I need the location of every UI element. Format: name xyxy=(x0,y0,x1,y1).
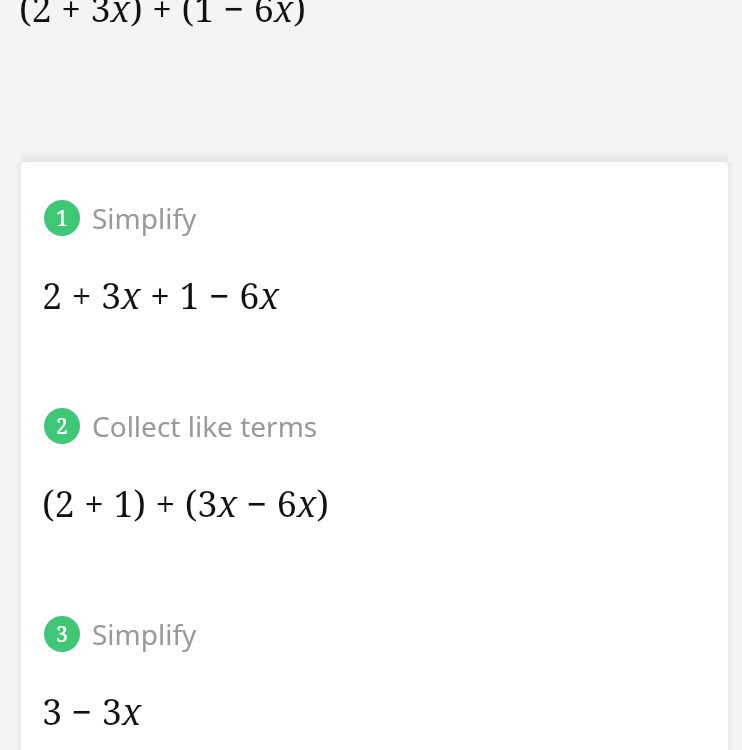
staticText: Simplify xyxy=(92,615,197,653)
button[interactable]: 3 xyxy=(21,611,728,657)
staticText: 3 xyxy=(56,620,68,649)
staticText: (2 + 1) + (3x − 6x) xyxy=(42,479,329,528)
staticText: 3 − 3x xyxy=(42,687,142,736)
staticText: 2 + 3x + 1 − 6x xyxy=(42,271,280,320)
staticText: (2 + 3x) + (1 − 6x) xyxy=(19,0,306,33)
staticText: Collect like terms xyxy=(92,407,318,445)
button[interactable]: 2 xyxy=(21,403,728,449)
staticText: 1 xyxy=(56,204,68,233)
staticText: 2 xyxy=(56,412,68,441)
button[interactable]: 1 xyxy=(21,162,728,750)
button[interactable]: 1 xyxy=(21,195,728,241)
staticText: Simplify xyxy=(92,199,197,237)
